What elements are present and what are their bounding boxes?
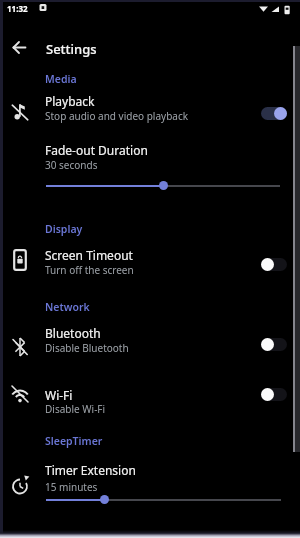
staticText: Screen Timeout xyxy=(45,247,133,263)
button[interactable] xyxy=(100,495,109,504)
staticText: Wi-Fi xyxy=(45,387,73,403)
staticText: Playback xyxy=(45,93,95,109)
button[interactable] xyxy=(0,90,300,132)
staticText: 30 seconds xyxy=(45,158,98,172)
button[interactable] xyxy=(159,181,168,190)
button[interactable] xyxy=(7,35,32,60)
staticText: Stop audio and video playback xyxy=(45,109,189,123)
staticText: Settings xyxy=(46,40,97,58)
staticText: Disable Wi-Fi xyxy=(45,402,106,416)
button[interactable] xyxy=(261,388,287,401)
staticText: Network xyxy=(45,300,90,314)
button[interactable] xyxy=(0,138,300,198)
staticText: 11:32 xyxy=(7,3,28,14)
staticText: Disable Bluetooth xyxy=(45,341,129,355)
button[interactable] xyxy=(0,380,300,422)
staticText: Timer Extension xyxy=(45,462,136,478)
staticText: Bluetooth xyxy=(45,325,101,341)
button[interactable] xyxy=(0,322,300,364)
button[interactable] xyxy=(261,338,287,351)
button[interactable] xyxy=(261,107,287,120)
staticText: Turn off the screen xyxy=(45,263,134,277)
button[interactable] xyxy=(0,242,300,284)
staticText: Media xyxy=(45,72,77,86)
staticText: SleepTimer xyxy=(45,434,103,448)
button[interactable] xyxy=(261,258,287,271)
staticText: Display xyxy=(45,222,83,236)
button[interactable] xyxy=(0,458,300,518)
staticText: 15 minutes xyxy=(45,480,98,494)
staticText: Fade-out Duration xyxy=(45,142,148,158)
